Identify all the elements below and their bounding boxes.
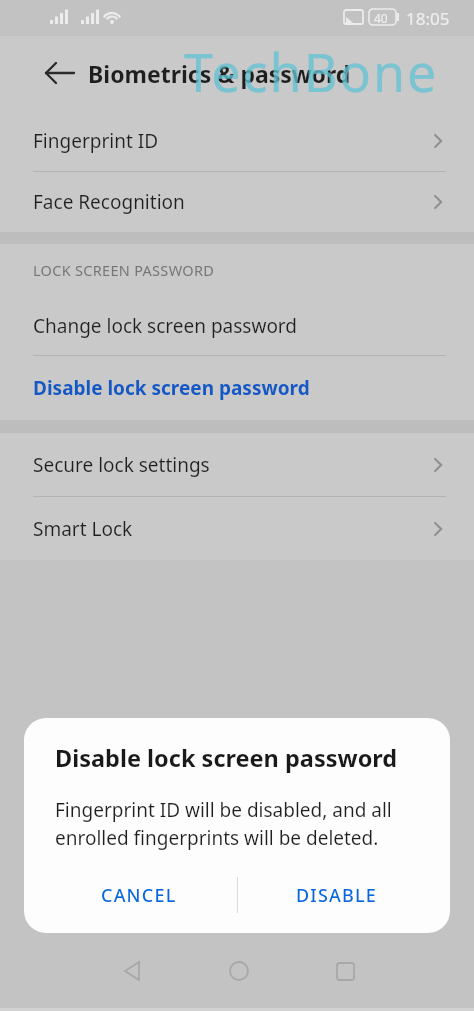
button[interactable] [325, 951, 365, 991]
staticText: TechBone [184, 36, 439, 107]
button[interactable]: Face Recognition [0, 172, 474, 232]
staticText: Disable lock screen password [55, 742, 398, 774]
staticText: Fingerprint ID [33, 128, 159, 154]
button[interactable]: Fingerprint ID [0, 110, 474, 172]
staticText: Biometrics & password [88, 58, 351, 89]
staticText: DISABLE [296, 883, 378, 908]
button[interactable] [40, 53, 80, 93]
button[interactable]: Smart Lock [0, 497, 474, 560]
staticText: Smart Lock [33, 516, 133, 542]
staticText: Disable lock screen password [33, 375, 310, 401]
staticText: 18:05 [406, 7, 450, 30]
staticText: Fingerprint ID will be disabled, and all… [55, 797, 392, 850]
button[interactable]: Change lock screen password [0, 296, 474, 356]
button[interactable]: CANCEL [40, 867, 237, 923]
staticText: Change lock screen password [33, 313, 298, 339]
staticText: LOCK SCREEN PASSWORD [33, 260, 215, 280]
button[interactable] [219, 951, 259, 991]
staticText: 40 [374, 10, 388, 26]
button[interactable]: DISABLE [238, 867, 436, 923]
staticText: Secure lock settings [33, 452, 210, 478]
button[interactable]: Disable lock screen password [0, 356, 474, 420]
button[interactable] [112, 951, 152, 991]
staticText: Face Recognition [33, 189, 185, 215]
button[interactable]: Secure lock settings [0, 433, 474, 497]
staticText: CANCEL [101, 883, 177, 908]
